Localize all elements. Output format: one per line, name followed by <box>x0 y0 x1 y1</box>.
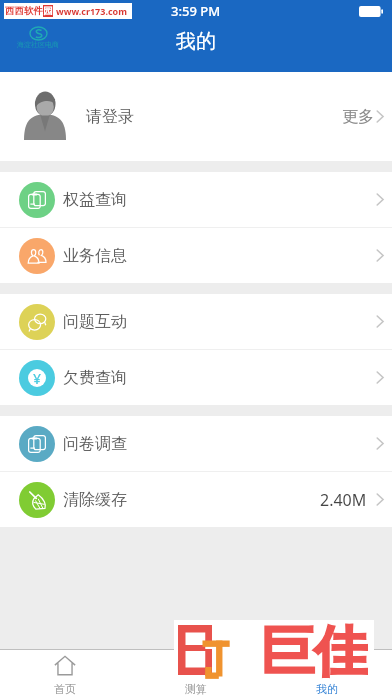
staticText: 问卷调查 <box>63 434 127 454</box>
button[interactable]: 权益查询 <box>0 172 392 227</box>
staticText: 测算 <box>185 682 207 696</box>
staticText: www.cr173.com <box>56 5 127 17</box>
staticText: 西西软件 <box>5 5 43 17</box>
button[interactable]: 问卷调查 <box>0 416 392 471</box>
staticText: 更多 <box>342 107 374 127</box>
button[interactable]: 测算 <box>130 650 261 696</box>
staticText: 业务信息 <box>63 246 127 266</box>
staticText: 权益查询 <box>63 190 127 210</box>
staticText: 2.40M <box>320 489 367 511</box>
button[interactable]: 业务信息 <box>0 228 392 283</box>
button[interactable]: 请登录 <box>0 72 392 161</box>
staticText: 清除缓存 <box>63 490 127 510</box>
button[interactable]: 我的 <box>261 650 392 696</box>
button[interactable]: 首页 <box>0 650 130 696</box>
staticText: 问题互动 <box>63 312 127 332</box>
staticText: 首页 <box>54 682 76 696</box>
staticText: 欠费查询 <box>63 368 127 388</box>
staticText: 3:59 PM <box>171 2 221 20</box>
staticText: 海淀社区电商 <box>17 40 59 49</box>
button[interactable]: 问题互动 <box>0 294 392 349</box>
staticText: 园 <box>43 5 53 17</box>
staticText: 我的 <box>176 29 216 54</box>
button[interactable]: ¥ <box>0 350 392 405</box>
button[interactable]: 清除缓存 <box>0 472 392 527</box>
staticText: 请登录 <box>86 107 134 127</box>
staticText: ¥ <box>33 369 42 388</box>
staticText: 我的 <box>316 682 338 696</box>
staticText: 巨佳 <box>260 618 368 681</box>
